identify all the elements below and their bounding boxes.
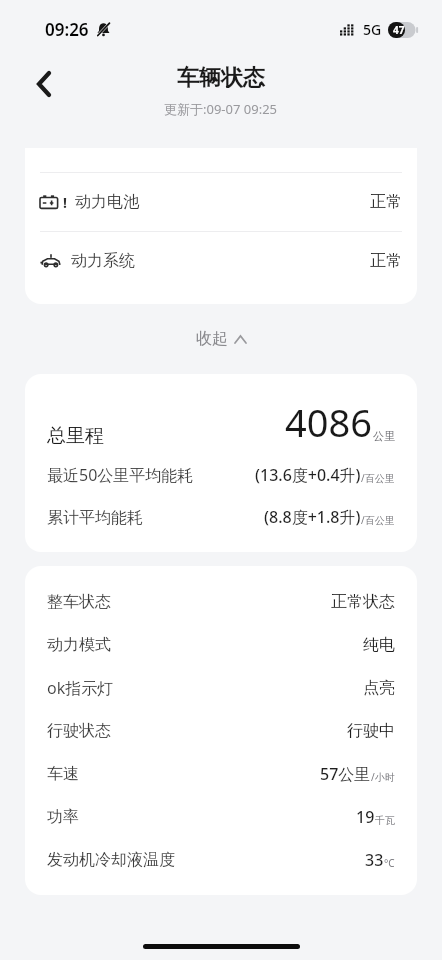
staticText: 19 [356,806,375,828]
button[interactable]: ! [25,173,417,231]
staticText: 功率 [47,807,79,827]
staticText: 正常 [370,192,402,212]
staticText: 整车状态 [47,592,111,612]
staticText: 动力电池 [75,192,139,212]
staticText: 车辆状态 [177,64,265,92]
button[interactable]: 收起 [182,323,260,355]
staticText: 公里 [373,429,395,443]
button[interactable]: 最近50公里平均能耗 [47,464,395,486]
staticText: (13.6度+0.4升) [255,464,361,486]
staticText: 47 [393,23,405,37]
staticText: 发动机冷却液温度 [47,850,175,870]
staticText: °C [384,856,395,870]
staticText: 动力系统 [71,251,135,271]
staticText: 5G [363,20,382,39]
staticText: 车速 [47,764,79,784]
staticText: 纯电 [363,635,395,655]
button[interactable]: ok指示灯 [47,666,395,709]
staticText: 57公里 [320,763,371,785]
staticText: 点亮 [363,678,395,698]
staticText: 33 [365,849,384,871]
staticText: 4086 [285,396,372,448]
staticText: /百公里 [361,513,395,527]
staticText: /百公里 [361,471,395,485]
staticText: 更新于:09-07 09:25 [164,100,278,118]
button[interactable]: Back [22,62,66,106]
button[interactable]: 累计平均能耗 [47,506,395,528]
staticText: 行驶中 [347,721,395,741]
staticText: 行驶状态 [47,721,111,741]
staticText: /小时 [371,770,395,784]
staticText: 正常 [370,251,402,271]
staticText: 总里程 [47,424,104,448]
staticText: 收起 [196,329,228,349]
button[interactable]: 整车状态 [47,580,395,623]
button[interactable]: 动力系统 [25,232,417,290]
staticText: 正常状态 [331,592,395,612]
staticText: ! [63,193,67,212]
button[interactable]: 动力模式 [47,623,395,666]
staticText: 千瓦 [375,814,395,827]
staticText: 09:26 [45,18,89,41]
button[interactable]: 功率 [47,795,395,838]
staticText: 累计平均能耗 [47,508,143,528]
button[interactable]: 行驶状态 [47,709,395,752]
button[interactable]: 发动机冷却液温度 [47,838,395,881]
staticText: (8.8度+1.8升) [264,506,361,528]
staticText: ok指示灯 [47,677,114,699]
staticText: 最近50公里平均能耗 [47,464,194,486]
button[interactable]: 车速 [47,752,395,795]
staticText: 动力模式 [47,635,111,655]
